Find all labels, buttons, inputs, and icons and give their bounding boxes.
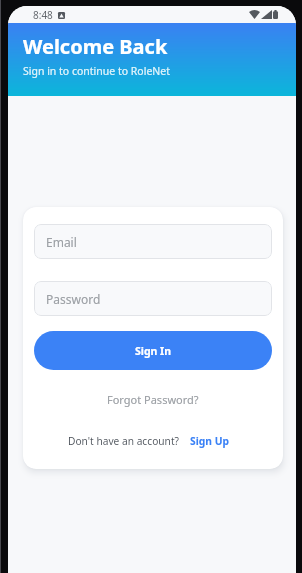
staticText: Sign in to continue to RoleNet [23, 64, 171, 78]
button[interactable]: Email [34, 224, 272, 259]
staticText: Welcome Back [23, 33, 168, 60]
staticText: Sign Up [190, 434, 229, 448]
button[interactable]: Sign In [34, 331, 272, 370]
other: Notification [58, 12, 65, 19]
other: Battery [273, 10, 278, 19]
other: Mobile signal [261, 10, 272, 19]
other: Wi-Fi [249, 10, 260, 19]
button[interactable]: Forgot Password? [101, 389, 205, 410]
staticText: Sign In [135, 344, 172, 358]
staticText: 8:48 [33, 8, 53, 22]
button[interactable]: Sign Up [190, 434, 229, 448]
staticText: Password [46, 291, 101, 307]
staticText: Don't have an account? [68, 434, 180, 448]
button[interactable]: Password [34, 281, 272, 316]
staticText: Email [46, 234, 77, 250]
staticText: Forgot Password? [107, 392, 199, 407]
